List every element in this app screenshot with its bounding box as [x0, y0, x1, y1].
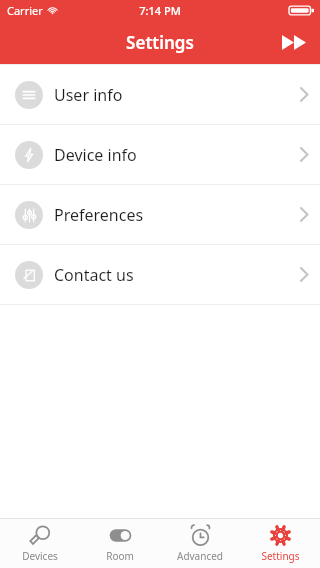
button[interactable]: Devices	[0, 519, 80, 568]
button[interactable]: User info	[0, 65, 320, 124]
staticText: Contact us	[54, 264, 134, 286]
staticText: Settings	[126, 31, 194, 54]
staticText: 7:14 PM	[139, 3, 181, 18]
button[interactable]: Advanced	[160, 519, 240, 568]
staticText: Room	[106, 549, 134, 563]
staticText: Settings	[261, 549, 300, 563]
button[interactable]: Fast forward	[274, 22, 314, 62]
staticText: Carrier	[7, 3, 43, 18]
staticText: Devices	[22, 549, 58, 563]
button[interactable]: Contact us	[0, 245, 320, 304]
staticText: Preferences	[54, 204, 144, 226]
staticText: Device info	[54, 144, 137, 166]
button[interactable]: Preferences	[0, 185, 320, 244]
button[interactable]: Settings	[240, 519, 320, 568]
staticText: User info	[54, 84, 123, 106]
button[interactable]: Device info	[0, 125, 320, 184]
staticText: Advanced	[177, 549, 223, 563]
button[interactable]: Room	[80, 519, 160, 568]
